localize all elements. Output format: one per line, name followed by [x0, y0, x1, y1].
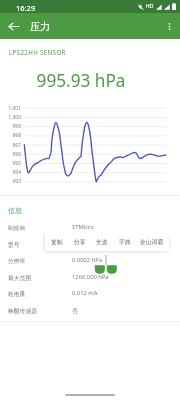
button[interactable]: 字典: [115, 231, 135, 251]
staticText: 998: [0, 132, 21, 139]
staticText: 分享: [74, 238, 86, 245]
staticText: 996: [0, 151, 21, 158]
staticText: 997: [0, 142, 21, 149]
button[interactable]: More options: [160, 17, 178, 35]
staticText: 999: [0, 123, 21, 130]
staticText: 制造商: [8, 224, 72, 231]
button[interactable]: Back: [4, 17, 22, 35]
staticText: STMicro: [72, 223, 94, 231]
button[interactable]: 最大范围: [0, 269, 180, 285]
staticText: 字典: [119, 238, 131, 245]
staticText: 995: [0, 160, 21, 167]
staticText: 0.012 mA: [72, 289, 98, 297]
button[interactable]: 分辨率: [0, 252, 180, 268]
staticText: 16:29: [16, 3, 36, 13]
staticText: 全选: [96, 238, 108, 245]
staticText: 分辨率: [8, 257, 72, 264]
button[interactable]: 分享: [70, 231, 90, 251]
staticText: 否: [72, 307, 78, 314]
button[interactable]: 唤醒传感器: [0, 302, 180, 318]
button[interactable]: 复制: [47, 231, 67, 251]
button[interactable]: 型号: [0, 236, 180, 252]
staticText: 信息: [8, 206, 22, 215]
staticText: 型号: [8, 241, 72, 248]
staticText: 1,001: [0, 105, 21, 112]
staticText: 1260.000 hPa: [72, 273, 109, 281]
staticText: 复制: [51, 238, 63, 245]
staticText: 1,000: [0, 114, 21, 121]
staticText: HD: [146, 3, 154, 10]
staticText: LPS22HH SENSOR: [9, 48, 66, 56]
staticText: 995.93 hPa: [0, 69, 162, 92]
staticText: 994: [0, 169, 21, 176]
button[interactable]: 耗电量: [0, 285, 180, 301]
staticText: 993: [0, 178, 21, 185]
button[interactable]: 制造商: [0, 219, 180, 235]
staticText: 压力: [30, 20, 50, 33]
staticText: 金山词霸: [140, 238, 164, 245]
button[interactable]: 金山词霸: [136, 231, 168, 251]
button[interactable]: 全选: [92, 231, 112, 251]
staticText: 最大范围: [8, 274, 72, 281]
staticText: 耗电量: [8, 290, 72, 297]
staticText: 0.0002 hPa: [72, 256, 102, 264]
staticText: 唤醒传感器: [8, 307, 72, 314]
